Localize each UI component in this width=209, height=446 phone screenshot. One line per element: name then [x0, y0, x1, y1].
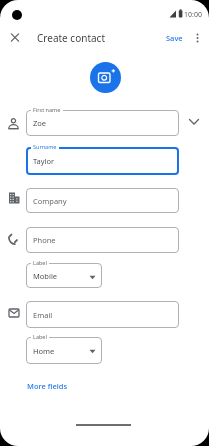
button[interactable]: Phone: [26, 227, 179, 253]
button[interactable]: [7, 30, 23, 46]
staticText: First name: [33, 106, 61, 113]
staticText: Home: [33, 346, 55, 356]
button[interactable]: [90, 62, 121, 93]
staticText: Create contact: [37, 31, 106, 45]
button[interactable]: Company: [26, 188, 179, 213]
button[interactable]: More fields: [27, 381, 68, 391]
staticText: Zoe: [33, 118, 47, 128]
staticText: More fields: [27, 381, 68, 391]
staticText: Email: [33, 310, 53, 320]
staticText: Save: [166, 33, 183, 43]
button[interactable]: Taylor: [26, 147, 179, 175]
staticText: Taylor: [33, 156, 55, 166]
staticText: Mobile: [33, 271, 58, 281]
staticText: Label: [33, 259, 47, 266]
staticText: Surname: [33, 143, 57, 150]
staticText: Phone: [33, 235, 56, 245]
staticText: 10:00: [184, 10, 202, 20]
staticText: Company: [33, 196, 67, 206]
button[interactable]: [192, 30, 203, 46]
button[interactable]: Zoe: [26, 110, 179, 136]
button[interactable]: Mobile: [26, 263, 102, 288]
button[interactable]: Email: [26, 301, 179, 328]
button[interactable]: Home: [26, 337, 102, 364]
staticText: Label: [33, 333, 47, 340]
button[interactable]: Save: [166, 33, 183, 43]
